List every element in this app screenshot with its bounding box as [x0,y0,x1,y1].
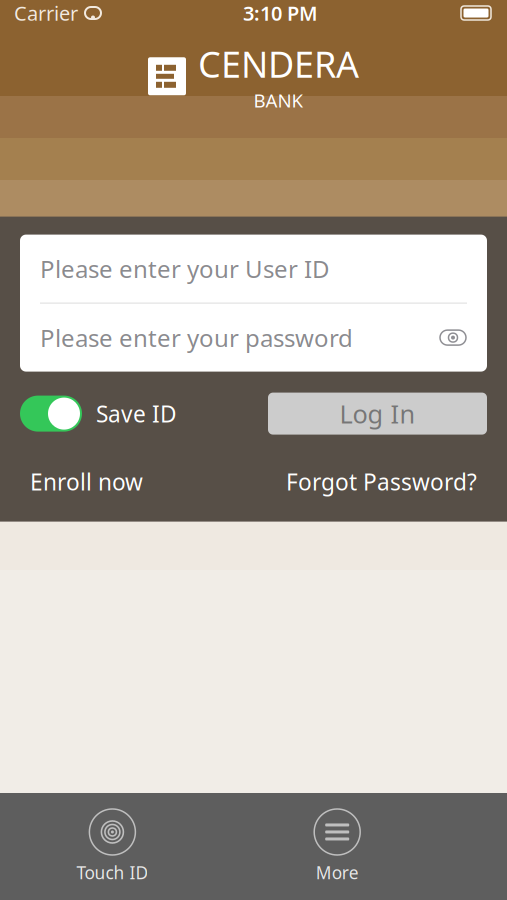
staticText: 3:10 PM [243,0,318,26]
staticText: BANK [253,88,303,113]
button[interactable]: Forgot Password? [286,461,477,503]
button[interactable]: More [282,803,392,890]
button[interactable]: Please enter your password [20,304,487,372]
staticText: Save ID [96,398,177,429]
button[interactable]: Please enter your User ID [20,235,487,303]
staticText: Touch ID [76,861,148,884]
staticText: More [316,861,359,884]
button[interactable]: Log In [268,393,487,435]
staticText: Log In [339,397,415,430]
button[interactable]: Touch ID [57,803,167,890]
staticText: Enroll now [30,467,143,497]
staticText: CENDERA [198,40,359,88]
staticText: Please enter your User ID [40,253,330,285]
staticText: Please enter your password [40,322,353,354]
staticText: Carrier [14,0,78,26]
button[interactable]: Enroll now [30,461,143,503]
staticText: Forgot Password? [286,467,477,497]
button[interactable]: Save ID [20,396,177,432]
